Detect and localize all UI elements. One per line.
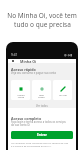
button[interactable]: Meu plano <box>32 80 51 100</box>
staticText: Minha conta <box>17 93 25 99</box>
button[interactable]: Fechar <box>11 59 15 63</box>
button[interactable]: Ver todos <box>8 103 76 108</box>
staticText: Ao continuar você concorda com os Termos… <box>11 141 69 144</box>
staticText: Ver todos <box>36 104 48 108</box>
staticText: Oi Wifi <box>59 93 67 96</box>
staticText: No Minha Oi, você tem <box>7 11 77 20</box>
staticText: Entrar <box>37 133 47 137</box>
staticText: Minha Oi <box>20 59 37 63</box>
staticText: Veja seu consumo e pague sua conta <box>11 71 56 75</box>
button[interactable]: Minha conta <box>11 80 30 100</box>
staticText: tudo o que precisa <box>14 20 71 29</box>
staticText: Faça login e tenha acesso a todos os ser… <box>11 120 66 124</box>
staticText: da sua conta Oi <box>11 123 30 127</box>
staticText: 9:41 <box>11 53 18 57</box>
staticText: Acesso rápido <box>11 67 36 72</box>
button[interactable]: Entrar <box>11 131 73 139</box>
staticText: e a Política de Privacidade da Oi S.A. <box>11 144 52 147</box>
button[interactable]: Oi Wifi <box>53 80 72 100</box>
staticText: ◍ ⬗ ▮ <box>64 53 73 57</box>
staticText: Acesso completo <box>11 116 42 121</box>
staticText: Meu plano <box>38 93 45 99</box>
